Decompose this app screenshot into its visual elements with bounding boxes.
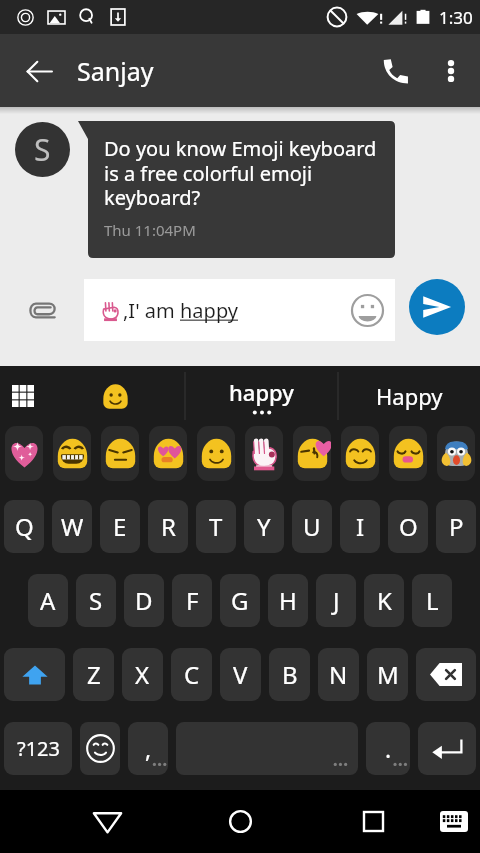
staticText: Sanjay [77, 54, 154, 88]
staticText: P [449, 510, 464, 543]
button[interactable]: V [220, 648, 261, 701]
button[interactable]: O [388, 500, 428, 553]
button[interactable]: X [122, 648, 163, 701]
button[interactable]: H [268, 574, 308, 627]
button[interactable]: happy [185, 366, 338, 426]
button[interactable]: . [366, 722, 410, 775]
button[interactable]: F [172, 574, 212, 627]
staticText: W [61, 510, 84, 543]
staticText: happy [229, 377, 294, 407]
staticText: L [426, 584, 439, 617]
button[interactable]: Z [73, 648, 114, 701]
button[interactable]: D [124, 574, 164, 627]
button[interactable]: J [316, 574, 356, 627]
button[interactable]: C [171, 648, 212, 701]
button[interactable]: S [76, 574, 116, 627]
staticText: A [40, 584, 56, 617]
staticText: D [135, 584, 153, 617]
button[interactable]: Home [212, 790, 268, 853]
staticText: ,I' am [123, 297, 180, 324]
button[interactable]: U [292, 500, 332, 553]
staticText: B [282, 658, 298, 691]
staticText: Do you know Emoji keyboard is a free col… [104, 135, 377, 211]
staticText: Y [257, 510, 271, 543]
staticText: J [333, 584, 340, 617]
button[interactable]: Recents [345, 790, 401, 853]
button[interactable]: Emoji 3 [101, 426, 139, 481]
button[interactable]: Back [79, 790, 135, 853]
button[interactable]: E [100, 500, 140, 553]
button[interactable]: Call [367, 42, 425, 100]
button[interactable]: R [148, 500, 188, 553]
staticText: , [145, 733, 152, 764]
staticText: . [385, 733, 392, 764]
staticText: I [356, 510, 365, 543]
button[interactable]: Attach [14, 282, 70, 338]
staticText: R [161, 510, 176, 543]
staticText: Happy [376, 381, 443, 411]
button[interactable]: Emoji 4 [149, 426, 187, 481]
button[interactable]: Enter [418, 722, 476, 775]
button[interactable]: Emoji 7 [293, 426, 331, 481]
staticText: K [377, 584, 392, 617]
staticText: X [135, 658, 150, 691]
staticText: F [186, 584, 199, 617]
staticText: Thu 11:04PM [104, 220, 196, 240]
button[interactable]: Space [176, 722, 358, 775]
button[interactable]: Emoji 8 [341, 426, 379, 481]
button[interactable]: Back [10, 42, 68, 100]
staticText: Z [87, 658, 101, 691]
staticText: N [329, 658, 348, 691]
button[interactable]: Q [4, 500, 44, 553]
button[interactable]: Keyboard layouts [0, 366, 46, 426]
staticText: O [399, 510, 418, 543]
button[interactable]: Shift [4, 648, 65, 701]
staticText: U [303, 510, 321, 543]
button[interactable]: N [318, 648, 359, 701]
button[interactable]: W [52, 500, 92, 553]
button[interactable]: B [269, 648, 310, 701]
staticText: V [233, 658, 248, 691]
button[interactable]: ?123 [4, 722, 72, 775]
button[interactable]: Emoji [80, 722, 120, 775]
button[interactable]: Send [409, 279, 465, 335]
button[interactable]: More options [425, 45, 477, 97]
button[interactable]: M [367, 648, 408, 701]
button[interactable]: A [28, 574, 68, 627]
button[interactable]: Emoji [46, 366, 185, 426]
button[interactable]: P [436, 500, 476, 553]
staticText: G [231, 584, 249, 617]
button[interactable]: I [340, 500, 380, 553]
staticText: S [89, 584, 103, 617]
staticText: T [209, 510, 223, 543]
button[interactable]: L [412, 574, 452, 627]
button[interactable]: Emoji 9 [389, 426, 427, 481]
button[interactable]: K [364, 574, 404, 627]
button[interactable]: Emoji 1 [5, 426, 43, 481]
button[interactable]: Happy [338, 366, 480, 426]
button[interactable]: Backspace [416, 648, 476, 701]
staticText: ?123 [17, 735, 60, 762]
button[interactable]: Emoji 6 [245, 426, 283, 481]
button[interactable]: Emoji 5 [197, 426, 235, 481]
button[interactable]: , [128, 722, 168, 775]
button[interactable]: Switch keyboard [428, 790, 480, 853]
staticText: E [113, 510, 127, 543]
staticText: M [377, 658, 399, 691]
button[interactable]: Emoji 2 [53, 426, 91, 481]
button[interactable]: Emoji 10 [437, 426, 475, 481]
button[interactable]: Y [244, 500, 284, 553]
staticText: H [279, 584, 297, 617]
staticText: Q [15, 510, 34, 543]
button[interactable]: Emoji [349, 292, 385, 328]
staticText: 1:30 [439, 6, 473, 29]
staticText: happy [180, 297, 238, 324]
staticText: S [34, 129, 51, 170]
button[interactable]: T [196, 500, 236, 553]
staticText: C [184, 658, 200, 691]
button[interactable]: G [220, 574, 260, 627]
